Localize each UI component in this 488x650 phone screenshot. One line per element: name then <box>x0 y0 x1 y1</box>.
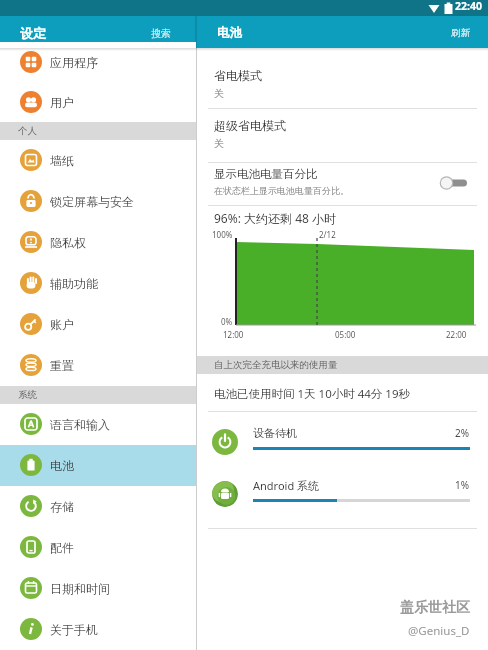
staticText: 关 <box>214 87 224 100</box>
staticText: 语言和输入 <box>50 417 110 432</box>
button[interactable]: 应用程序 <box>0 42 196 82</box>
staticText: 关 <box>214 137 224 150</box>
staticText: 省电模式 <box>214 68 262 83</box>
button[interactable]: 账户 <box>0 304 196 345</box>
staticText: 超级省电模式 <box>214 118 286 133</box>
staticText: 搜索 <box>151 27 171 40</box>
staticText: 个人 <box>18 125 37 137</box>
staticText: 锁定屏幕与安全 <box>50 194 134 209</box>
staticText: 05:00 <box>335 329 356 340</box>
staticText: 2/12 <box>319 229 336 240</box>
staticText: 1% <box>455 478 470 492</box>
button[interactable]: 语言和输入 <box>0 404 196 445</box>
staticText: 显示电池电量百分比 <box>214 167 318 181</box>
staticText: 盖乐世社区 <box>400 599 470 617</box>
button[interactable]: 日期和时间 <box>0 568 196 609</box>
staticText: 电池已使用时间 1天 10小时 44分 19秒 <box>214 386 411 402</box>
staticText: 账户 <box>50 317 74 332</box>
button[interactable] <box>197 108 488 162</box>
staticText: 用户 <box>50 95 74 110</box>
staticText: 电池 <box>50 458 74 473</box>
button[interactable]: 存储 <box>0 486 196 527</box>
button[interactable]: 隐私权 <box>0 222 196 263</box>
staticText: 应用程序 <box>50 55 98 70</box>
button[interactable] <box>197 48 488 108</box>
staticText: 在状态栏上显示电池电量百分比。 <box>214 185 349 196</box>
button[interactable] <box>439 175 471 191</box>
button[interactable] <box>197 162 488 205</box>
button[interactable]: 搜索 <box>138 21 184 45</box>
staticText: 2% <box>455 426 470 440</box>
staticText: 自上次完全充电以来的使用量 <box>214 359 338 371</box>
button[interactable]: 用户 <box>0 82 196 122</box>
staticText: Android 系统 <box>253 478 320 493</box>
button[interactable]: 关于手机 <box>0 609 196 650</box>
staticText: 22:00 <box>446 329 467 340</box>
staticText: 隐私权 <box>50 235 86 250</box>
staticText: 辅助功能 <box>50 276 98 291</box>
button[interactable]: 墙纸 <box>0 140 196 181</box>
staticText: 0% <box>221 316 233 327</box>
staticText: 设备待机 <box>253 426 297 440</box>
button[interactable]: 重置 <box>0 345 196 386</box>
staticText: 墙纸 <box>50 153 74 168</box>
button[interactable]: 配件 <box>0 527 196 568</box>
staticText: 刷新 <box>451 27 470 39</box>
staticText: 22:40 <box>455 0 482 13</box>
button[interactable] <box>197 466 488 518</box>
button[interactable]: 电池 <box>0 445 196 486</box>
button[interactable]: 锁定屏幕与安全 <box>0 181 196 222</box>
staticText: 重置 <box>50 358 74 373</box>
staticText: 电池 <box>217 25 242 41</box>
staticText: 100% <box>212 229 233 240</box>
staticText: 系统 <box>18 389 37 401</box>
staticText: 关于手机 <box>50 622 98 637</box>
staticText: 设定 <box>20 25 46 41</box>
button[interactable] <box>197 414 488 466</box>
staticText: 配件 <box>50 540 74 555</box>
staticText: @Genius_D <box>408 623 470 639</box>
button[interactable]: 刷新 <box>440 21 480 45</box>
staticText: 12:00 <box>223 329 244 340</box>
staticText: 存储 <box>50 499 74 514</box>
button[interactable]: 辅助功能 <box>0 263 196 304</box>
staticText: 日期和时间 <box>50 581 110 596</box>
staticText: 96%: 大约还剩 48 小时 <box>214 210 337 226</box>
